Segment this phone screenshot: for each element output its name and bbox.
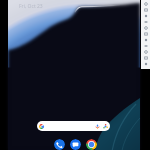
button[interactable]: More [141, 61, 150, 67]
button[interactable]: Chrome [86, 139, 97, 150]
button[interactable]: Overview [141, 55, 150, 61]
button[interactable] [37, 121, 110, 131]
button[interactable]: Messages [70, 139, 81, 150]
button[interactable]: Screenshot [141, 31, 150, 37]
button[interactable]: Volume down [141, 13, 150, 19]
button[interactable]: Phone [54, 139, 65, 150]
button[interactable]: Rotate right [141, 25, 150, 31]
button[interactable]: Rotate left [141, 19, 150, 25]
button[interactable]: Volume up [141, 7, 150, 13]
button[interactable]: Back [141, 43, 150, 49]
button[interactable]: Zoom [141, 37, 150, 43]
staticText: Fri, Oct 23 [19, 3, 43, 10]
button[interactable]: Power [141, 1, 150, 7]
button[interactable]: Home [141, 49, 150, 55]
